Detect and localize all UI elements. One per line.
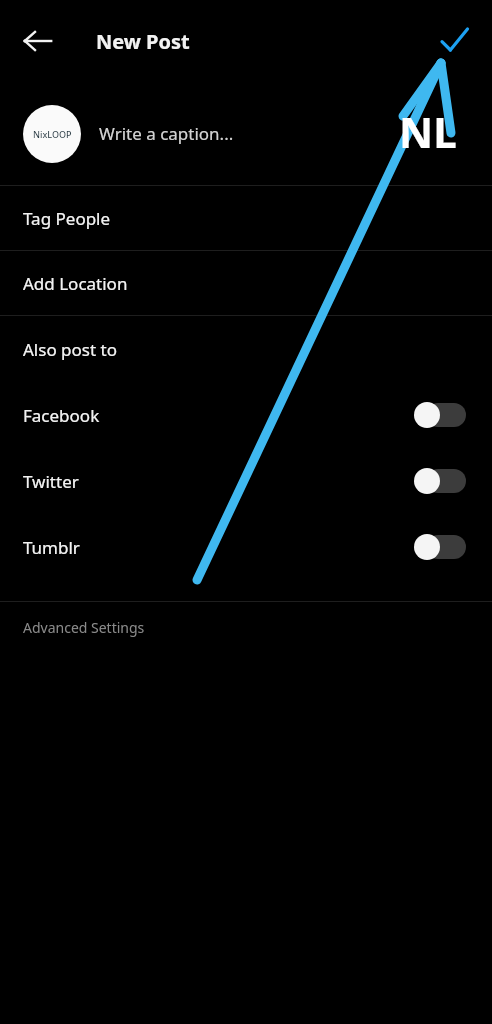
button[interactable]: Tag People [0,186,492,250]
button[interactable]: Advanced Settings [0,602,492,652]
staticText: NixLOOP [33,128,72,140]
staticText: NL [399,103,479,160]
staticText: New Post [96,28,190,55]
button[interactable]: NixLOOP [0,82,492,185]
button[interactable]: Add Location [0,251,492,315]
staticText: Tumblr [23,536,80,559]
button[interactable]: Twitter [0,448,492,514]
staticText: Twitter [23,470,79,493]
button[interactable]: Tumblr [0,514,492,580]
staticText: Tag People [23,207,111,230]
button[interactable]: Facebook [0,382,492,448]
staticText: Add Location [23,272,128,295]
staticText: Facebook [23,404,100,427]
staticText: Advanced Settings [23,618,145,637]
staticText: Write a caption... [99,122,234,145]
button[interactable]: Share post [428,15,480,67]
button[interactable]: Back [10,13,66,69]
staticText: Also post to [23,338,117,361]
